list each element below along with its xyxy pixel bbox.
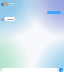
button[interactable] bbox=[9, 3, 64, 6]
button[interactable]: Contact profile bbox=[4, 2, 8, 6]
button[interactable]: Back bbox=[0, 2, 4, 6]
button[interactable] bbox=[2, 68, 58, 72]
button[interactable] bbox=[5, 17, 15, 21]
button[interactable]: Send bbox=[59, 68, 63, 72]
button[interactable] bbox=[47, 11, 61, 14]
